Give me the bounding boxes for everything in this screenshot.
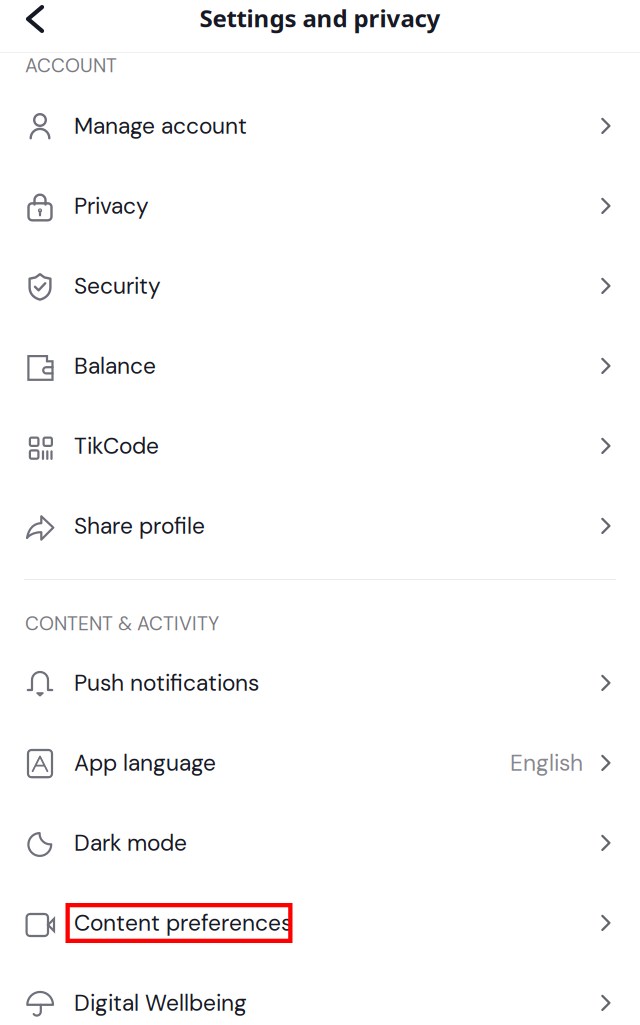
button[interactable]: Content preferences	[0, 883, 640, 963]
staticText: ACCOUNT	[25, 53, 117, 78]
staticText: Digital Wellbeing	[74, 988, 247, 1018]
button[interactable]: Balance	[0, 326, 640, 406]
staticText: App language	[74, 748, 216, 778]
button[interactable]: App language	[0, 723, 640, 803]
button[interactable]: Privacy	[0, 166, 640, 246]
button[interactable]: Manage account	[0, 86, 640, 166]
staticText: Privacy	[74, 191, 149, 221]
button[interactable]: TikCode	[0, 406, 640, 486]
button[interactable]: Dark mode	[0, 803, 640, 883]
staticText: CONTENT & ACTIVITY	[25, 611, 219, 636]
staticText: Dark mode	[74, 828, 187, 858]
staticText: Balance	[74, 351, 156, 381]
button[interactable]: Security	[0, 246, 640, 326]
staticText: English	[510, 748, 583, 778]
staticText: Content preferences	[74, 908, 292, 938]
staticText: Share profile	[74, 511, 205, 541]
button[interactable]: Share profile	[0, 486, 640, 566]
staticText: Push notifications	[74, 668, 259, 698]
staticText: Settings and privacy	[199, 2, 440, 34]
staticText: Security	[74, 271, 161, 301]
button[interactable]: Digital Wellbeing	[0, 963, 640, 1025]
button[interactable]: Push notifications	[0, 643, 640, 723]
staticText: TikCode	[74, 431, 159, 461]
staticText: Manage account	[74, 111, 247, 141]
button[interactable]: Back	[0, 0, 61, 46]
